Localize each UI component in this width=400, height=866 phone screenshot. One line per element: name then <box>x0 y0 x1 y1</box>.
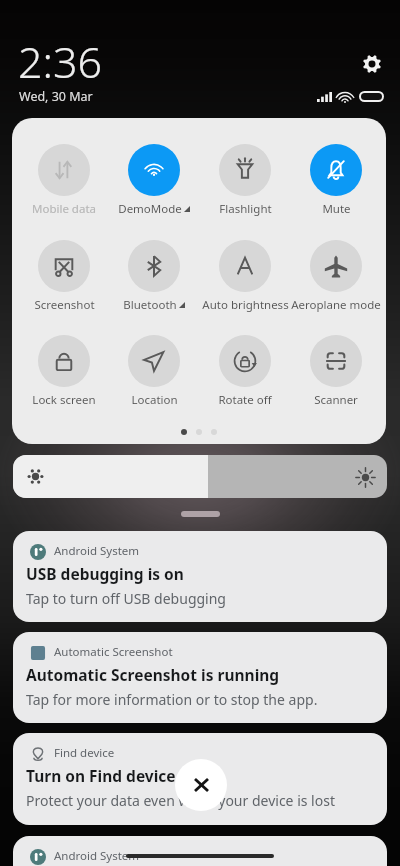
staticText: Tap for more information or to stop the … <box>26 690 318 709</box>
button[interactable]: Mute <box>291 144 381 217</box>
staticText: Bluetooth <box>123 297 177 313</box>
button[interactable]: Auto brightness <box>200 240 290 313</box>
staticText: Flashlight <box>219 201 272 217</box>
staticText: Android System <box>54 543 140 559</box>
button[interactable]: Find device <box>13 733 387 825</box>
button[interactable]: Location <box>109 335 199 408</box>
staticText: DemoMode <box>118 201 182 217</box>
staticText: Automatic Screenshot is running <box>26 664 280 685</box>
staticText: Automatic Screenshot <box>54 644 173 660</box>
staticText: Turn on Find device <box>26 765 176 786</box>
staticText: Location <box>131 392 178 408</box>
button[interactable]: Settings <box>362 54 382 74</box>
button[interactable]: Close <box>175 759 227 811</box>
button[interactable]: Lock screen <box>19 335 109 408</box>
button[interactable]: Android System <box>13 836 387 866</box>
staticText: Protect your data even when your device … <box>26 791 335 810</box>
button[interactable]: Scanner <box>291 335 381 408</box>
button[interactable]: Automatic Screenshot <box>13 632 387 723</box>
staticText: Scanner <box>314 392 358 408</box>
staticText: USB debugging is on <box>26 563 184 584</box>
staticText: Aeroplane mode <box>291 297 381 313</box>
staticText: Tap to turn off USB debugging <box>26 589 226 608</box>
button[interactable]: Aeroplane mode <box>291 240 381 313</box>
staticText: Rotate off <box>218 392 272 408</box>
staticText: Screenshot <box>34 297 95 313</box>
staticText: Lock screen <box>32 392 96 408</box>
staticText: Mobile data <box>32 201 96 217</box>
button[interactable]: Bluetooth <box>109 240 199 313</box>
button[interactable]: Rotate off <box>200 335 290 408</box>
staticText: Find device <box>54 745 115 761</box>
button[interactable]: Android System <box>13 531 387 622</box>
staticText: 2:36 <box>18 32 103 91</box>
staticText: Android System <box>54 848 140 864</box>
staticText: Mute <box>322 201 351 217</box>
staticText: Wed, 30 Mar <box>19 88 93 105</box>
button[interactable]: Screenshot <box>19 240 109 313</box>
button[interactable]: Flashlight <box>200 144 290 217</box>
button[interactable]: Brightness <box>13 455 387 498</box>
button[interactable]: Expand <box>181 511 220 517</box>
button[interactable]: Mobile data <box>19 144 109 217</box>
staticText: Auto brightness <box>202 297 289 313</box>
button[interactable]: DemoMode <box>109 144 199 217</box>
